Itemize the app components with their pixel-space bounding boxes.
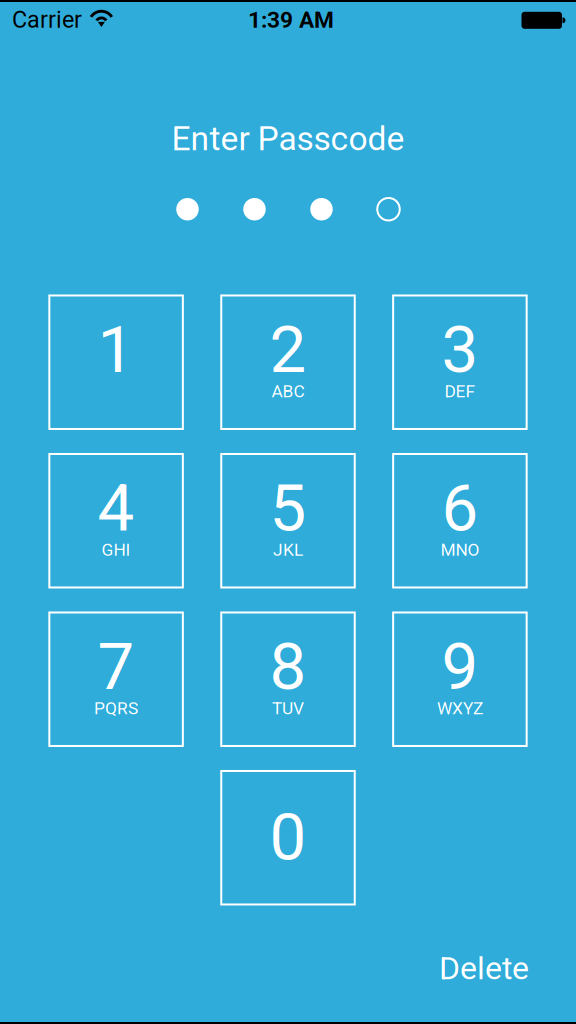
staticText: 6 (441, 470, 478, 546)
button[interactable]: 0 (221, 771, 355, 904)
button[interactable]: 6 (393, 454, 527, 587)
staticText: 2 (269, 311, 306, 388)
staticText: 1:39 AM (248, 7, 334, 33)
staticText: WXYZ (437, 698, 483, 718)
button[interactable]: 7 (49, 612, 183, 746)
staticText: 5 (269, 470, 306, 546)
button[interactable]: 2 (221, 295, 355, 429)
staticText: Carrier (12, 6, 82, 33)
button[interactable]: 1 (49, 295, 183, 429)
staticText: MNO (440, 540, 479, 560)
staticText: 7 (98, 628, 135, 705)
button[interactable]: Delete (433, 945, 535, 991)
staticText: 0 (269, 799, 306, 876)
button[interactable]: 4 (49, 454, 183, 587)
button[interactable]: 9 (393, 612, 527, 746)
staticText: ABC (271, 381, 304, 401)
staticText: 8 (269, 628, 306, 705)
staticText: 1 (98, 311, 135, 388)
staticText: 9 (441, 628, 478, 705)
staticText: PQRS (94, 698, 138, 718)
staticText: TUV (272, 698, 304, 718)
staticText: 4 (98, 470, 135, 546)
button[interactable]: 8 (221, 612, 355, 746)
staticText: JKL (273, 540, 303, 560)
button[interactable]: 3 (393, 295, 527, 429)
staticText: DEF (444, 381, 475, 401)
staticText: GHI (102, 540, 131, 560)
staticText: Delete (439, 949, 529, 987)
button[interactable]: 5 (221, 454, 355, 587)
staticText: 3 (441, 311, 478, 388)
staticText: Enter Passcode (171, 119, 404, 158)
